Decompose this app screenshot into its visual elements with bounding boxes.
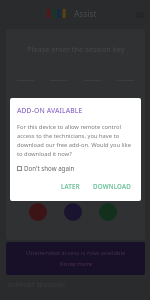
button[interactable]: Don't show again	[17, 164, 75, 172]
staticText: For this device to allow remote control …	[17, 123, 138, 158]
button[interactable]: Join session	[29, 203, 47, 221]
button[interactable]	[117, 73, 134, 81]
button[interactable]: Unattended access	[64, 203, 82, 221]
button[interactable]: Start session	[99, 203, 117, 221]
button[interactable]	[50, 73, 67, 81]
button[interactable]: Unattended access is now available	[6, 242, 145, 275]
staticText: Assist	[74, 8, 97, 19]
staticText: ADD-ON AVAILABLE	[17, 106, 83, 115]
staticText: LATER	[61, 182, 80, 190]
staticText: DOWNLOAD	[93, 182, 132, 190]
button[interactable]	[84, 73, 101, 81]
staticText: SUPPORT SESSIONS	[8, 281, 66, 289]
staticText: Don't show again	[24, 164, 75, 172]
button[interactable]	[17, 73, 34, 81]
staticText: Please enter the session key	[27, 44, 125, 54]
button[interactable]: DOWNLOAD	[90, 180, 135, 192]
staticText: Know more	[60, 260, 93, 268]
staticText: Unattended access is now available	[26, 249, 126, 257]
button[interactable]: LATER	[58, 180, 83, 192]
